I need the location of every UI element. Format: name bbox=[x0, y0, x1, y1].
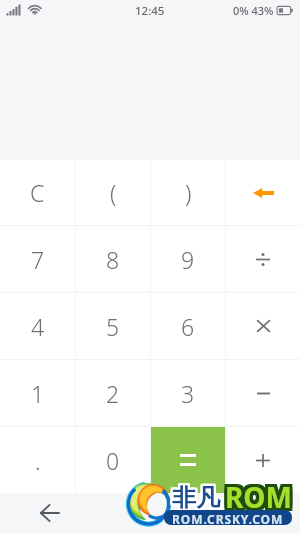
staticText: 非凡 bbox=[174, 481, 222, 511]
staticText: ROM bbox=[222, 481, 289, 519]
staticText: ROM bbox=[225, 475, 292, 513]
button[interactable]: Backspace bbox=[226, 160, 300, 225]
button[interactable]: ) bbox=[151, 160, 225, 225]
staticText: 0 bbox=[106, 445, 120, 476]
button[interactable]: C bbox=[0, 160, 75, 225]
staticText: 非凡 bbox=[170, 485, 218, 515]
button[interactable]: 0 bbox=[76, 427, 150, 493]
button[interactable]: 2 bbox=[76, 360, 150, 426]
staticText: 非凡 bbox=[172, 485, 220, 515]
button[interactable]: 1 bbox=[0, 360, 75, 426]
staticText: ROM bbox=[228, 475, 295, 513]
button[interactable]: 6 bbox=[151, 293, 225, 359]
staticText: ( bbox=[110, 177, 117, 208]
button[interactable]: Divide bbox=[226, 226, 300, 292]
staticText: ROM bbox=[222, 475, 289, 513]
staticText: 8 bbox=[106, 244, 120, 275]
staticText: 非凡 bbox=[172, 483, 220, 513]
staticText: ROM bbox=[225, 478, 292, 516]
staticText: ) bbox=[185, 177, 192, 208]
staticText: ROM bbox=[222, 478, 289, 516]
staticText: 3 bbox=[181, 378, 195, 409]
button[interactable]: 4 bbox=[0, 293, 75, 359]
button[interactable]: 3 bbox=[151, 360, 225, 426]
staticText: . bbox=[35, 445, 41, 476]
staticText: 非凡 bbox=[172, 481, 220, 511]
staticText: 非凡 bbox=[174, 483, 222, 513]
button[interactable]: Multiply bbox=[226, 293, 300, 359]
staticText: ROM bbox=[228, 478, 295, 516]
staticText: 1 bbox=[31, 378, 45, 409]
staticText: ROM bbox=[228, 481, 295, 519]
staticText: 7 bbox=[31, 244, 45, 275]
button[interactable]: Equals bbox=[151, 427, 225, 493]
staticText: C bbox=[30, 177, 45, 208]
staticText: ROM bbox=[225, 481, 292, 519]
button[interactable]: ( bbox=[76, 160, 150, 225]
staticText: 9 bbox=[181, 244, 195, 275]
button[interactable]: 7 bbox=[0, 226, 75, 292]
staticText: 2 bbox=[106, 378, 120, 409]
button[interactable]: Plus bbox=[226, 427, 300, 493]
staticText: 6 bbox=[181, 311, 195, 342]
staticText: 非凡 bbox=[170, 483, 218, 513]
button[interactable]: . bbox=[0, 427, 75, 493]
staticText: 0% 43% bbox=[233, 3, 274, 18]
staticText: 非凡 bbox=[174, 485, 222, 515]
button[interactable]: Back bbox=[32, 495, 68, 531]
button[interactable]: 9 bbox=[151, 226, 225, 292]
staticText: 5 bbox=[106, 311, 120, 342]
button[interactable]: Minus bbox=[226, 360, 300, 426]
button[interactable]: 8 bbox=[76, 226, 150, 292]
staticText: 非凡 bbox=[170, 481, 218, 511]
button[interactable]: 5 bbox=[76, 293, 150, 359]
staticText: ROM.CRSKY.COM bbox=[172, 511, 284, 527]
staticText: 12:45 bbox=[135, 3, 165, 19]
staticText: 4 bbox=[31, 311, 45, 342]
